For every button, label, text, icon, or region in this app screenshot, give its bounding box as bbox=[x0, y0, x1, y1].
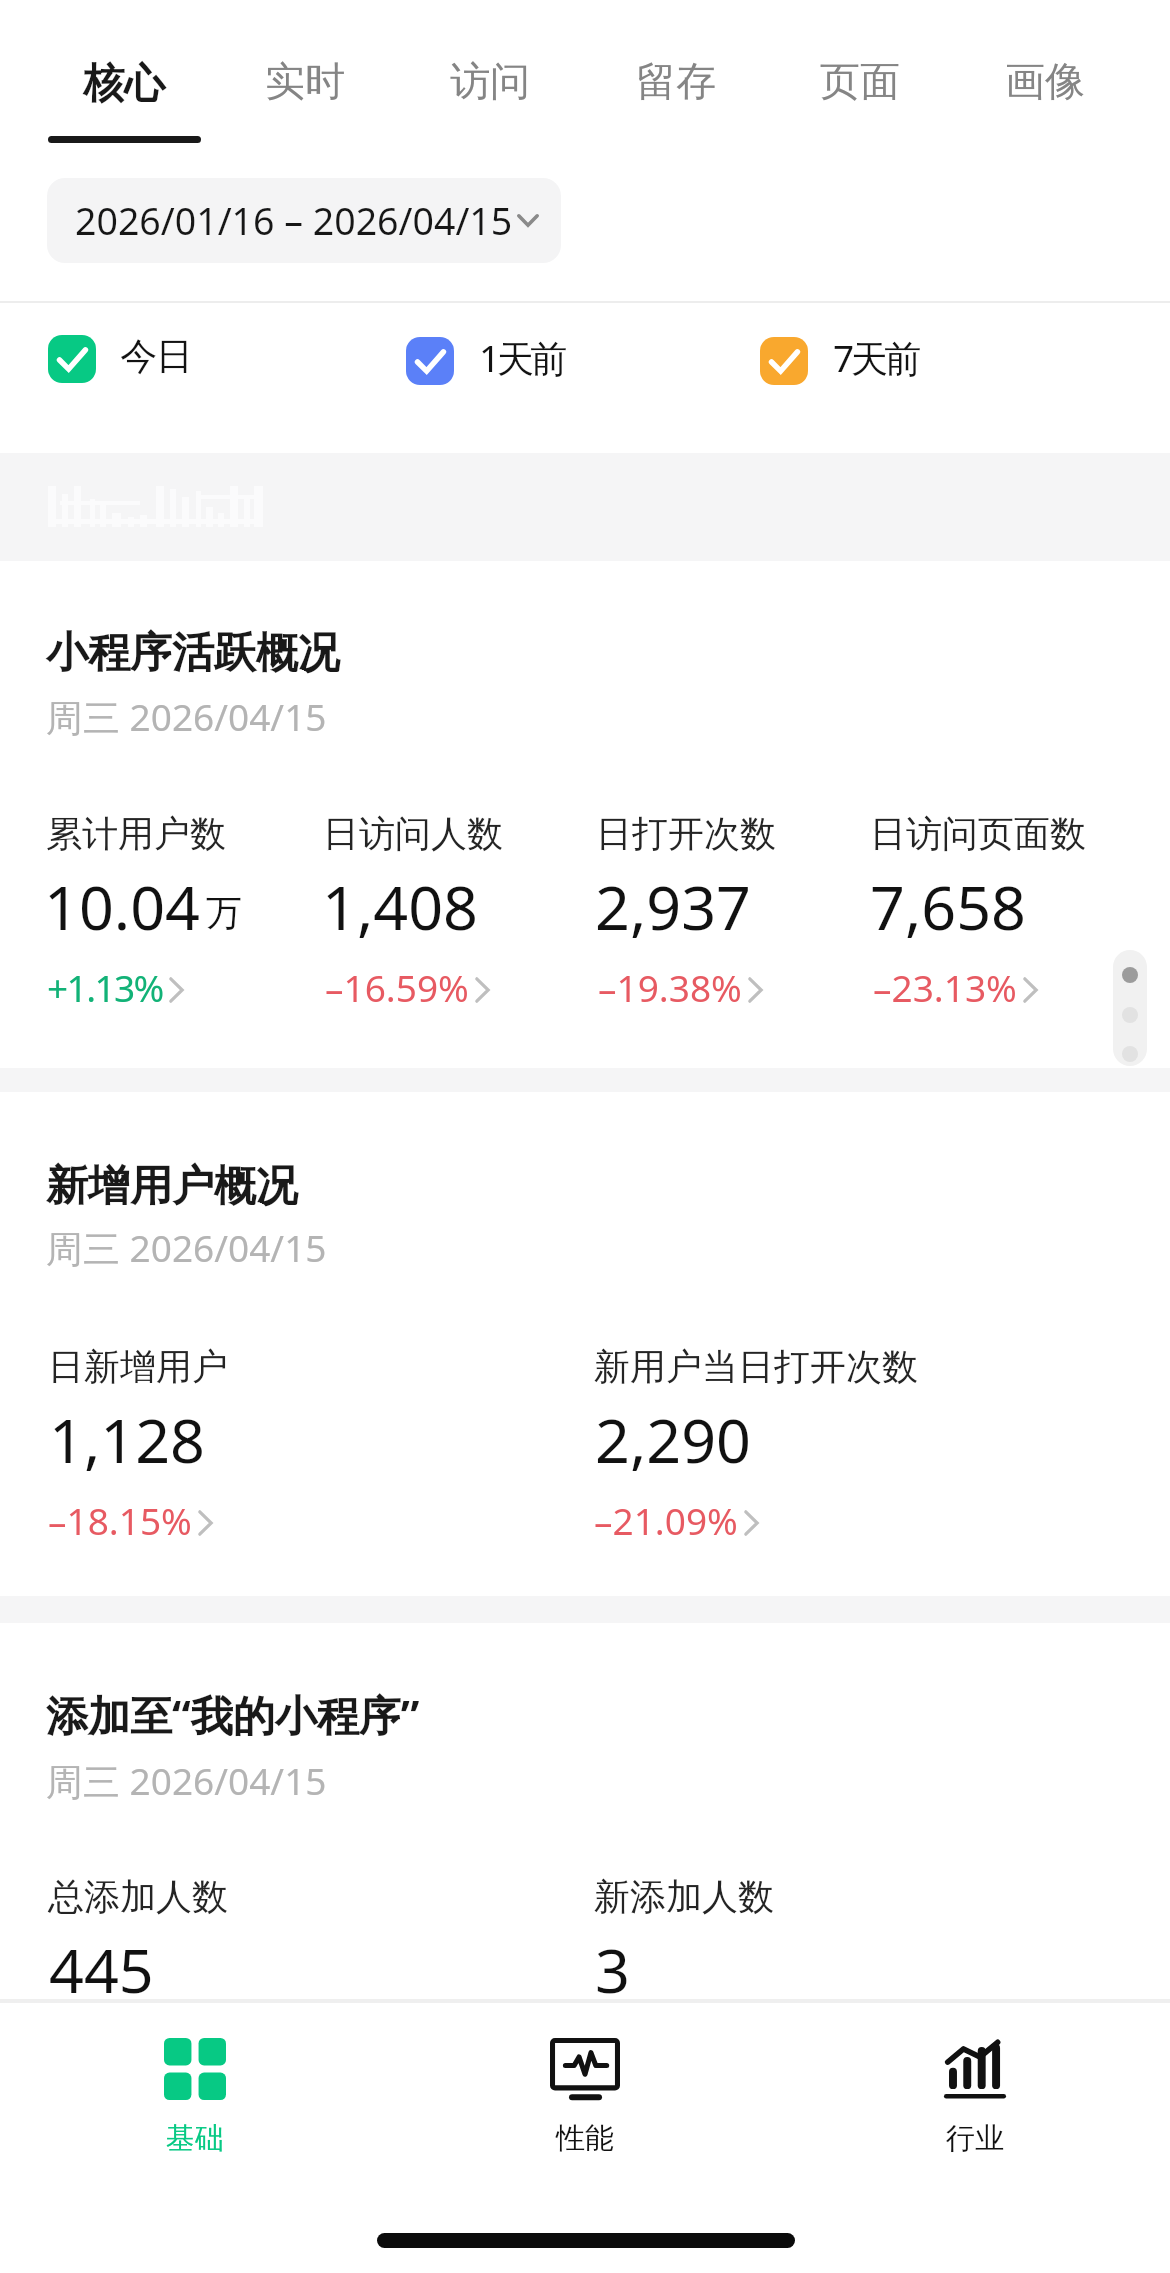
staticText: –23.13% bbox=[873, 962, 1017, 1012]
button[interactable]: –23.13% bbox=[873, 962, 1038, 1012]
staticText: 实时 bbox=[265, 56, 345, 106]
staticText: 小程序活跃概况 bbox=[46, 627, 340, 680]
staticText: 行业 bbox=[946, 2120, 1004, 2157]
staticText: 周三 2026/04/15 bbox=[46, 1755, 327, 1806]
staticText: 添加至“我的小程序” bbox=[46, 1686, 420, 1743]
button[interactable]: –21.09% bbox=[594, 1495, 759, 1545]
staticText: –16.59% bbox=[325, 962, 469, 1012]
staticText: 7,658 bbox=[870, 865, 1026, 948]
staticText: 核心 bbox=[83, 58, 165, 110]
button[interactable]: 核心 bbox=[32, 14, 216, 124]
staticText: 2,937 bbox=[595, 865, 751, 948]
staticText: +1.13% bbox=[47, 962, 163, 1012]
button[interactable]: 画像 bbox=[953, 14, 1137, 124]
staticText: 今日 bbox=[121, 333, 192, 380]
button[interactable]: 页面 bbox=[768, 14, 952, 124]
button[interactable]: 2,290 bbox=[0, 0, 156, 83]
staticText: 基础 bbox=[166, 2120, 224, 2157]
button[interactable]: 1天前 bbox=[406, 335, 564, 386]
button[interactable]: Page indicator bbox=[1113, 950, 1147, 1066]
button[interactable]: 基础 bbox=[75, 2020, 315, 2190]
staticText: 留存 bbox=[636, 56, 716, 106]
button[interactable]: –18.15% bbox=[48, 1495, 213, 1545]
staticText: 性能 bbox=[556, 2120, 614, 2157]
staticText: 访问 bbox=[450, 56, 530, 106]
staticText: 2026/01/16 – 2026/04/15 bbox=[75, 195, 513, 246]
staticText: 新增用户概况 bbox=[46, 1160, 298, 1213]
button[interactable]: –16.59% bbox=[325, 962, 490, 1012]
button[interactable]: 留存 bbox=[584, 14, 768, 124]
staticText: 7天前 bbox=[833, 332, 918, 383]
staticText: –19.38% bbox=[598, 962, 742, 1012]
staticText: 周三 2026/04/15 bbox=[46, 691, 327, 742]
staticText: –21.09% bbox=[594, 1495, 738, 1545]
staticText: 10.04 bbox=[44, 865, 200, 948]
staticText: 周三 2026/04/15 bbox=[46, 1222, 327, 1273]
button[interactable]: 性能 bbox=[465, 2020, 705, 2190]
button[interactable]: Date range 2026/01/16 – 2026/04/15 bbox=[47, 178, 561, 263]
button[interactable]: +1.13% bbox=[47, 962, 184, 1012]
button[interactable]: 行业 bbox=[855, 2020, 1095, 2190]
button[interactable]: 1,408 bbox=[322, 865, 478, 948]
button[interactable]: 实时 bbox=[213, 14, 397, 124]
staticText: 万 bbox=[206, 890, 242, 935]
button[interactable]: 1,128 bbox=[0, 0, 156, 83]
staticText: 页面 bbox=[820, 56, 900, 106]
staticText: –18.15% bbox=[48, 1495, 192, 1545]
staticText: 画像 bbox=[1005, 56, 1085, 106]
staticText: 1天前 bbox=[479, 332, 564, 383]
button[interactable]: 7,658 bbox=[870, 865, 1026, 948]
button[interactable]: –19.38% bbox=[598, 962, 763, 1012]
button[interactable]: 10.04 bbox=[44, 865, 236, 948]
button[interactable]: 2,937 bbox=[595, 865, 751, 948]
button[interactable]: 访问 bbox=[398, 14, 582, 124]
button[interactable]: 7天前 bbox=[760, 335, 918, 386]
button[interactable]: 445 bbox=[0, 0, 105, 83]
button[interactable]: 今日 bbox=[48, 335, 192, 383]
staticText: 1,408 bbox=[322, 865, 478, 948]
